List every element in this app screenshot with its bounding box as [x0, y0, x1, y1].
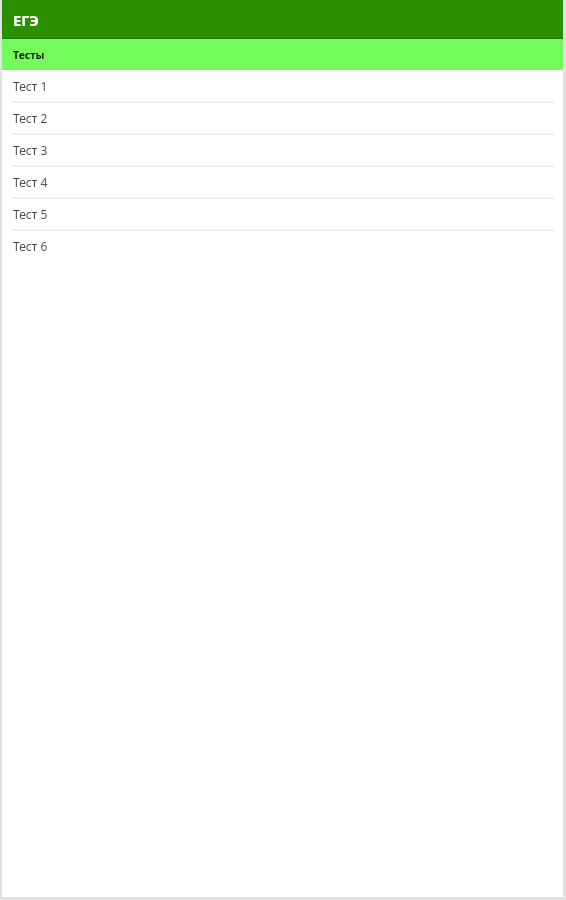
button[interactable]: Тест 4 [2, 166, 563, 198]
staticText: Тесты [13, 48, 45, 62]
button[interactable]: Тест 5 [2, 198, 563, 230]
button[interactable]: ЕГЭ [2, 0, 563, 38]
button[interactable]: Тест 2 [2, 102, 563, 134]
staticText: Тест 3 [13, 142, 48, 158]
staticText: Тест 2 [13, 110, 48, 126]
button[interactable]: Тест 3 [2, 134, 563, 166]
button[interactable]: Тест 1 [2, 70, 563, 102]
button[interactable]: Тесты [2, 38, 563, 70]
staticText: Тест 1 [13, 78, 48, 94]
staticText: Тест 5 [13, 206, 48, 222]
staticText: Тест 6 [13, 238, 48, 254]
staticText: ЕГЭ [13, 10, 39, 30]
button[interactable]: Тест 6 [2, 230, 563, 262]
staticText: Тест 4 [13, 174, 48, 190]
